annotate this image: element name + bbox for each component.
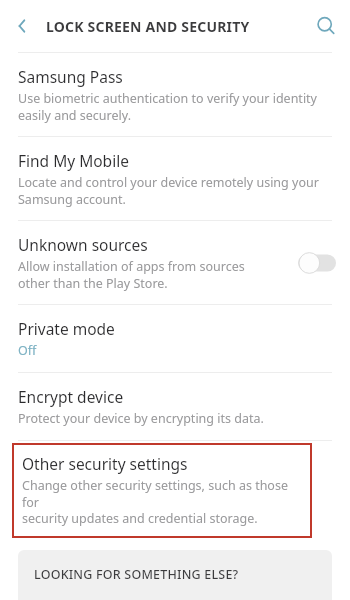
button[interactable]: Other security settings xyxy=(12,443,312,538)
staticText: LOOKING FOR SOMETHING ELSE? xyxy=(34,566,239,582)
staticText: Samsung Pass xyxy=(18,66,123,87)
button[interactable]: Encrypt device xyxy=(0,373,350,440)
staticText: Locate and control your device remotely … xyxy=(18,174,319,207)
button[interactable]: Samsung Pass xyxy=(0,53,350,136)
button[interactable]: Search xyxy=(302,0,350,52)
button[interactable]: Unknown sources xyxy=(0,221,350,304)
staticText: Encrypt device xyxy=(18,386,124,407)
staticText: Allow installation of apps from sources … xyxy=(18,258,245,291)
staticText: Protect your device by encrypting its da… xyxy=(18,410,264,427)
staticText: Use biometric authentication to verify y… xyxy=(18,90,317,123)
button[interactable]: Private mode xyxy=(0,305,350,372)
staticText: Private mode xyxy=(18,318,115,339)
button[interactable]: Back xyxy=(0,0,46,52)
staticText: Other security settings xyxy=(22,453,188,474)
staticText: LOCK SCREEN AND SECURITY xyxy=(46,17,302,36)
staticText: Change other security settings, such as … xyxy=(22,477,302,526)
staticText: Unknown sources xyxy=(18,234,148,255)
staticText: Find My Mobile xyxy=(18,150,129,171)
staticText: Off xyxy=(18,342,37,359)
button[interactable]: Find My Mobile xyxy=(0,137,350,220)
